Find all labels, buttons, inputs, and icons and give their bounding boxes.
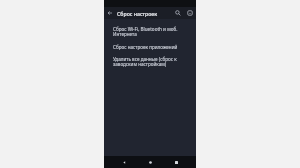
button[interactable]: Search bbox=[172, 7, 184, 19]
button[interactable]: Help bbox=[184, 7, 196, 19]
staticText: Сброс Wi-Fi, Bluetooth и моб. Интернета bbox=[113, 26, 190, 38]
button[interactable]: Back bbox=[118, 156, 130, 168]
button[interactable]: Сброс настроек приложений bbox=[104, 41, 196, 53]
staticText: Удалить все данные (сброс к заводским на… bbox=[113, 56, 190, 68]
button[interactable]: Back bbox=[104, 7, 116, 19]
button[interactable]: Удалить все данные (сброс к заводским на… bbox=[104, 53, 196, 71]
button[interactable]: Сброс Wi-Fi, Bluetooth и моб. Интернета bbox=[104, 23, 196, 41]
button[interactable]: Recents bbox=[170, 156, 182, 168]
button[interactable]: Home bbox=[144, 156, 156, 168]
staticText: Сброс настроек приложений bbox=[113, 44, 178, 50]
staticText: Сброс настроек bbox=[117, 10, 158, 17]
